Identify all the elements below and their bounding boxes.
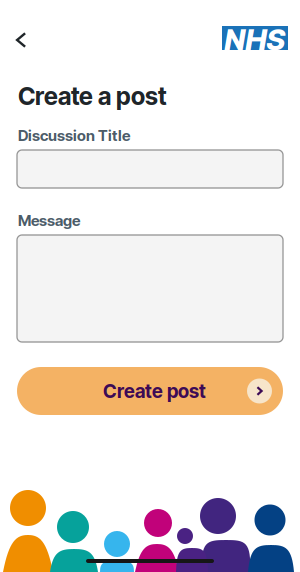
button[interactable]: Back [4, 23, 38, 57]
staticText: Create post [103, 379, 206, 402]
staticText: NHS [224, 22, 285, 57]
staticText: Message [18, 211, 80, 230]
staticText: Create a post [18, 81, 167, 111]
staticText: Discussion Title [18, 126, 130, 145]
button[interactable]: Create post [17, 367, 283, 415]
